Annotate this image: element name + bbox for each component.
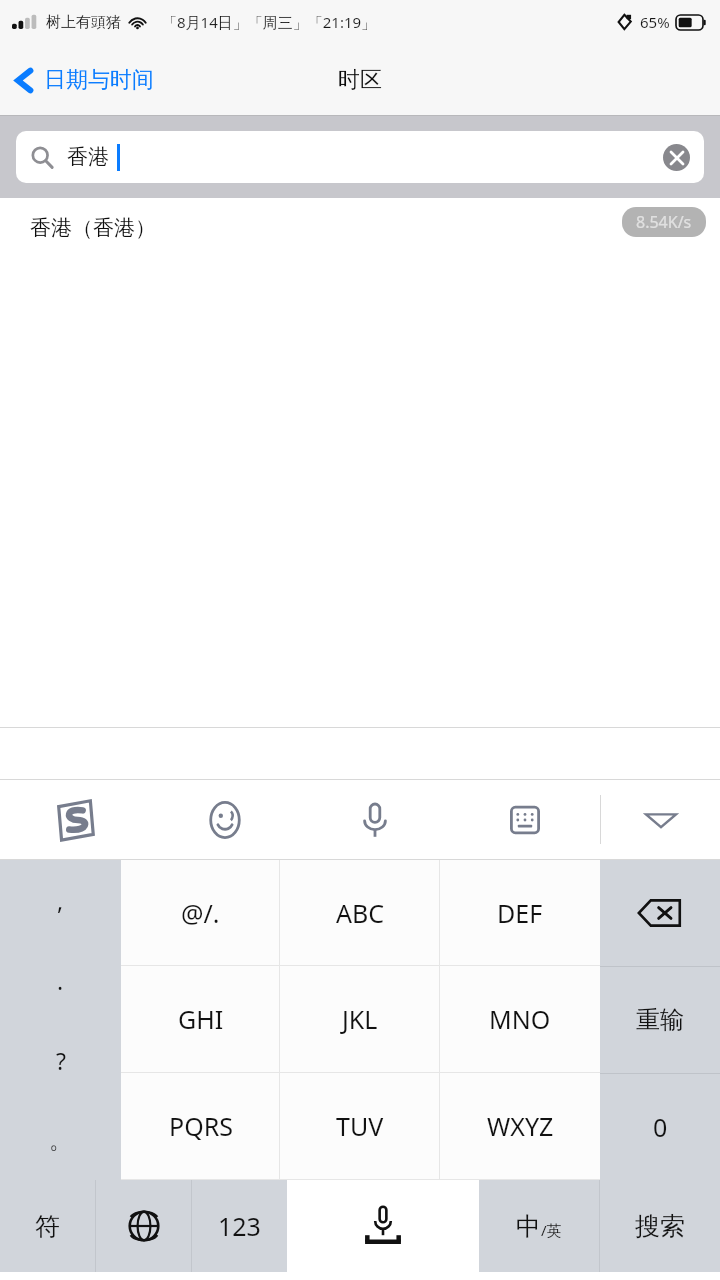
staticText: 123 xyxy=(218,1209,261,1243)
button[interactable]: ABC xyxy=(280,860,440,965)
button[interactable]: 0 xyxy=(600,1074,720,1180)
staticText: GHI xyxy=(178,1002,224,1036)
button[interactable]: 香港 xyxy=(16,131,704,183)
button[interactable]: PQRS xyxy=(121,1073,280,1179)
button[interactable]: 语音 xyxy=(300,780,450,859)
staticText: 65% xyxy=(640,12,670,32)
staticText: , xyxy=(57,885,64,916)
staticText: MNO xyxy=(489,1002,551,1036)
staticText: 重输 xyxy=(636,1005,684,1035)
staticText: 「8月14日」「周三」「21:19」 xyxy=(162,12,377,32)
staticText: 0 xyxy=(653,1110,668,1144)
staticText: JKL xyxy=(342,1002,378,1036)
staticText: 8.54K/s xyxy=(636,211,692,233)
staticText: /英 xyxy=(541,1220,562,1240)
staticText: DEF xyxy=(497,896,543,930)
staticText: WXYZ xyxy=(487,1109,554,1143)
button[interactable]: WXYZ xyxy=(440,1073,600,1179)
button[interactable]: 符 xyxy=(0,1180,95,1272)
button[interactable]: 收起键盘 xyxy=(601,780,720,859)
button[interactable]: 表情 xyxy=(150,780,300,859)
button[interactable]: 搜索 xyxy=(600,1180,720,1272)
button[interactable]: TUV xyxy=(280,1073,440,1179)
button[interactable]: JKL xyxy=(280,966,440,1072)
button[interactable]: DEF xyxy=(440,860,600,965)
button[interactable]: 香港（香港） xyxy=(0,198,720,258)
staticText: 。 xyxy=(49,1126,72,1155)
button[interactable]: 123 xyxy=(192,1180,287,1272)
button[interactable]: @/. xyxy=(121,860,280,965)
staticText: 搜索 xyxy=(635,1211,685,1242)
staticText: 香港 xyxy=(67,144,109,170)
staticText: . xyxy=(57,965,64,996)
button[interactable]: 输入法 xyxy=(0,780,150,859)
button[interactable]: 键盘设置 xyxy=(450,780,600,859)
staticText: ABC xyxy=(336,896,385,930)
staticText: TUV xyxy=(336,1109,384,1143)
button[interactable]: ? xyxy=(0,1020,121,1100)
button[interactable]: GHI xyxy=(121,966,280,1072)
button[interactable]: 返回 xyxy=(0,44,166,116)
button[interactable]: . xyxy=(0,940,121,1020)
staticText: 符 xyxy=(35,1211,60,1242)
staticText: 树上有頭猪 xyxy=(46,13,121,32)
staticText: 时区 xyxy=(338,66,382,94)
staticText: ? xyxy=(56,1045,66,1076)
button[interactable]: 语音输入 xyxy=(287,1180,479,1272)
staticText: PQRS xyxy=(169,1109,233,1143)
button[interactable]: 中 xyxy=(479,1180,599,1272)
button[interactable]: 重输 xyxy=(600,967,720,1073)
button[interactable]: , xyxy=(0,860,121,940)
button[interactable]: 切换语言 xyxy=(96,1180,191,1272)
button[interactable]: 删除 xyxy=(600,860,720,966)
button[interactable]: 清除 xyxy=(663,144,690,171)
staticText: @/. xyxy=(181,896,220,930)
other: 返回 xyxy=(14,64,34,97)
button[interactable]: 。 xyxy=(0,1100,121,1180)
button[interactable]: MNO xyxy=(440,966,600,1072)
staticText: 中 xyxy=(516,1211,541,1242)
staticText: 香港（香港） xyxy=(30,215,156,241)
staticText: 日期与时间 xyxy=(44,66,154,94)
